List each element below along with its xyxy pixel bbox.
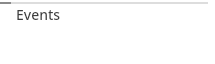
staticText: Events <box>16 5 61 24</box>
